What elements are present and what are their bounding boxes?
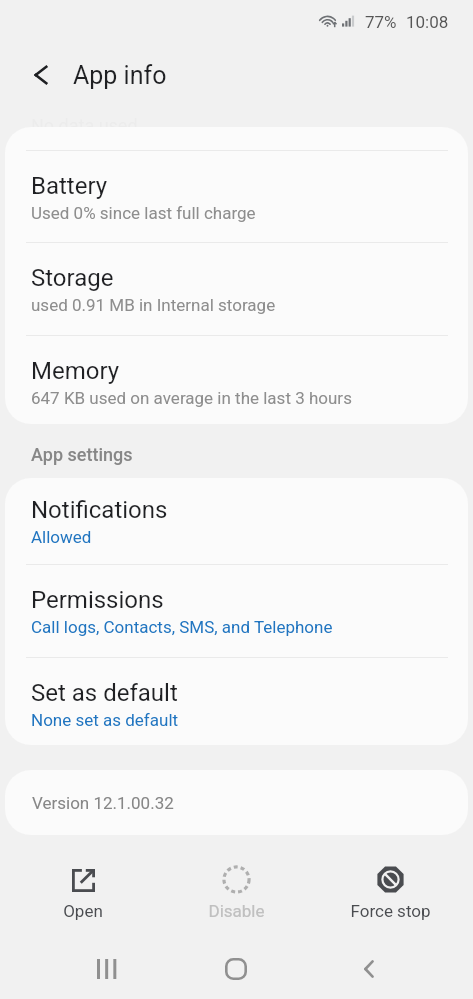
- staticText: 77%: [365, 12, 397, 32]
- button[interactable]: Battery: [5, 151, 468, 242]
- button[interactable]: Notifications: [5, 478, 468, 564]
- staticText: used 0.91 MB in Internal storage: [31, 295, 276, 315]
- button[interactable]: Recents: [79, 941, 135, 997]
- button[interactable]: Memory: [5, 336, 468, 424]
- staticText: 647 KB used on average in the last 3 hou…: [31, 388, 352, 408]
- button[interactable]: Storage: [5, 243, 468, 335]
- staticText: Permissions: [31, 586, 164, 614]
- staticText: 10:08: [406, 12, 449, 32]
- button[interactable]: Open: [23, 855, 143, 935]
- staticText: Disable: [208, 901, 265, 921]
- staticText: Force stop: [350, 901, 431, 921]
- staticText: Battery: [31, 172, 108, 200]
- staticText: Version 12.1.00.32: [32, 793, 174, 813]
- button[interactable]: Disable: [176, 855, 296, 935]
- button[interactable]: Permissions: [5, 565, 468, 657]
- staticText: Memory: [31, 357, 120, 385]
- staticText: App info: [73, 61, 167, 90]
- staticText: Storage: [31, 264, 114, 292]
- button[interactable]: Back: [341, 941, 397, 997]
- button[interactable]: Force stop: [330, 855, 450, 935]
- staticText: Notifications: [31, 496, 168, 524]
- staticText: App settings: [31, 444, 133, 465]
- button[interactable]: Set as default: [5, 658, 468, 745]
- staticText: No data used: [31, 115, 138, 136]
- staticText: Set as default: [31, 679, 178, 707]
- staticText: None set as default: [31, 710, 179, 730]
- button[interactable]: Version 12.1.00.32: [5, 770, 468, 835]
- staticText: Open: [63, 901, 103, 921]
- staticText: Allowed: [31, 527, 92, 547]
- button[interactable]: Home: [208, 941, 264, 997]
- button[interactable]: Back: [21, 55, 61, 95]
- staticText: Call logs, Contacts, SMS, and Telephone: [31, 617, 333, 637]
- staticText: Used 0% since last full charge: [31, 203, 256, 223]
